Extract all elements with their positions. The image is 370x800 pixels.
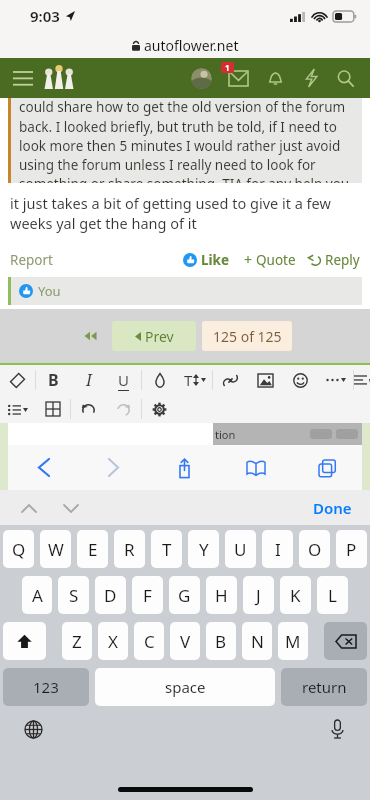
staticText: W [48, 538, 64, 561]
staticText: Done [313, 498, 352, 518]
button[interactable]: Eraser [0, 365, 35, 395]
staticText: B [215, 630, 227, 653]
button[interactable]: Prev [112, 321, 196, 351]
button[interactable]: B [206, 622, 236, 660]
button[interactable]: Table [35, 395, 70, 423]
button[interactable]: List [0, 395, 35, 423]
button[interactable]: Forward [78, 445, 149, 490]
staticText: N [251, 630, 264, 653]
staticText: it just takes a bit of getting used to g… [10, 193, 360, 234]
button[interactable]: space [95, 668, 275, 706]
button[interactable]: J [243, 576, 274, 614]
button[interactable]: Like [183, 249, 230, 271]
button[interactable]: Autoflower home [42, 61, 76, 95]
button[interactable]: Shift [3, 622, 46, 660]
button[interactable]: W [40, 530, 71, 568]
button[interactable]: Y [188, 530, 219, 568]
staticText: I [275, 538, 281, 561]
button[interactable]: return [281, 668, 367, 706]
button[interactable]: G [169, 576, 200, 614]
button[interactable]: T [151, 530, 182, 568]
staticText: could share how to get the old version o… [19, 98, 356, 183]
staticText: T [162, 538, 172, 561]
button[interactable]: Link [213, 365, 248, 395]
button[interactable]: K [280, 576, 311, 614]
button[interactable]: R [114, 530, 145, 568]
button[interactable]: + [244, 248, 296, 271]
button[interactable]: D [95, 576, 126, 614]
button[interactable]: Reply [308, 249, 360, 271]
button[interactable]: Font size [177, 365, 212, 395]
button[interactable]: H [206, 576, 237, 614]
button[interactable]: V [170, 622, 200, 660]
button[interactable]: Underline [106, 365, 141, 395]
button[interactable]: Emoji [283, 365, 318, 395]
staticText: Report [10, 251, 53, 269]
button[interactable]: 125 of 125 [202, 321, 292, 351]
button[interactable]: Backspace [324, 622, 367, 660]
staticText: R [124, 538, 135, 561]
button[interactable]: Search [330, 63, 360, 93]
button[interactable]: Tabs [291, 445, 362, 490]
staticText: H [215, 584, 228, 607]
button[interactable]: More options [318, 365, 353, 395]
button[interactable]: Back [8, 445, 78, 490]
button[interactable]: O [299, 530, 330, 568]
staticText: You [38, 282, 61, 300]
button[interactable]: What's new [296, 63, 326, 93]
staticText: T [184, 370, 193, 390]
button[interactable]: Dictation [322, 714, 352, 744]
button[interactable]: A [22, 576, 52, 614]
staticText: E [88, 538, 98, 561]
button[interactable]: Report [10, 249, 53, 271]
button[interactable]: Text colour [142, 365, 177, 395]
button[interactable]: F [132, 576, 163, 614]
button[interactable]: Z [62, 622, 92, 660]
button[interactable]: Bookmarks [220, 445, 291, 490]
staticText: Like [201, 251, 230, 269]
staticText: Prev [145, 327, 174, 346]
button[interactable]: U [225, 530, 256, 568]
button[interactable]: Bold [36, 365, 71, 395]
button[interactable]: Share [149, 445, 220, 490]
button[interactable]: Account [186, 63, 216, 93]
staticText: 123 [33, 677, 59, 697]
button[interactable]: First page [78, 324, 102, 348]
staticText: Y [199, 538, 209, 561]
button[interactable]: Italic [71, 365, 106, 395]
staticText: 9:03 [30, 6, 60, 26]
staticText: X [108, 630, 118, 653]
button[interactable]: Address bar autoflower.net [0, 32, 370, 58]
button[interactable]: P [336, 530, 367, 568]
button[interactable]: Change keyboard [18, 714, 48, 744]
button[interactable]: Inbox, 1 unread [222, 62, 254, 94]
button[interactable]: C [134, 622, 164, 660]
button[interactable]: Done [309, 494, 356, 522]
button[interactable]: 123 [3, 668, 89, 706]
button[interactable]: Redo [106, 395, 141, 423]
button[interactable]: Menu [8, 63, 38, 93]
button[interactable]: Alerts [260, 63, 290, 93]
staticText: return [302, 677, 347, 697]
button[interactable]: I [262, 530, 293, 568]
button[interactable]: N [242, 622, 272, 660]
staticText: Z [72, 630, 82, 653]
button[interactable]: S [58, 576, 89, 614]
staticText: J [256, 584, 261, 607]
button[interactable]: Q [3, 530, 34, 568]
button[interactable]: L [317, 576, 348, 614]
staticText: + [244, 250, 253, 269]
button[interactable]: X [98, 622, 128, 660]
button[interactable]: Previous field [12, 491, 46, 525]
staticText: G [178, 584, 191, 607]
button[interactable]: Settings [142, 395, 177, 423]
button[interactable]: M [278, 622, 308, 660]
button[interactable]: E [77, 530, 108, 568]
button[interactable]: Next field [54, 491, 88, 525]
staticText: D [104, 584, 117, 607]
staticText: Quote [256, 251, 296, 269]
button[interactable]: You [8, 277, 362, 305]
button[interactable]: Align [354, 365, 370, 395]
button[interactable]: Insert image [248, 365, 283, 395]
button[interactable]: Undo [71, 395, 106, 423]
